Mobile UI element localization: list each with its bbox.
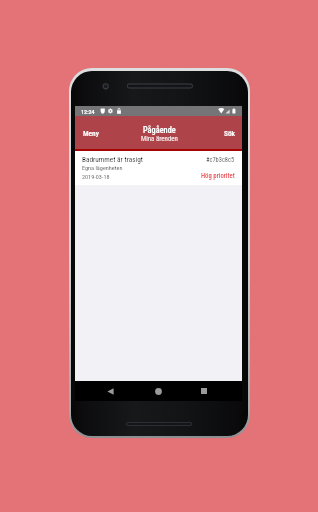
staticText: Egna lägenheten [82, 164, 123, 171]
staticText: Badrummet är trasigt [82, 155, 143, 164]
staticText: #c7b3c8c5 [206, 156, 235, 164]
staticText: Hög prioritet [201, 172, 235, 180]
staticText: Pågående [143, 125, 176, 135]
staticText: 12:24 [81, 108, 95, 115]
button[interactable]: Back [103, 381, 117, 401]
button[interactable]: Meny [75, 121, 107, 144]
button[interactable]: Sök [216, 121, 242, 144]
button[interactable]: Badrummet är trasigt [75, 151, 242, 180]
staticText: Sök [224, 129, 236, 138]
staticText: Meny [83, 129, 99, 138]
other: Wifi, signal and battery [218, 108, 236, 115]
button[interactable]: Recent apps [197, 381, 211, 401]
button[interactable]: Home [151, 381, 165, 401]
staticText: 2019-03-18 [82, 173, 110, 180]
other: Status icons [100, 108, 122, 114]
staticText: Mina ärenden [141, 135, 178, 143]
